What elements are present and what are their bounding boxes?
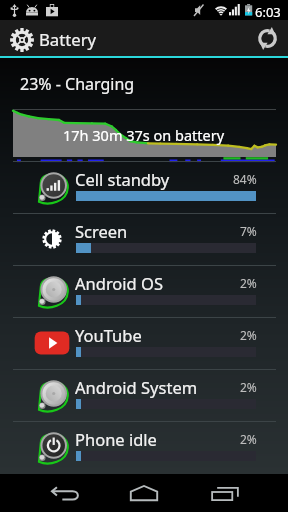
staticText: Screen	[75, 220, 128, 242]
staticText: YouTube	[75, 324, 142, 346]
button[interactable]: Android OS	[0, 266, 288, 317]
button[interactable]: Refresh	[246, 20, 288, 56]
staticText: Phone idle	[75, 428, 157, 450]
staticText: 7%	[240, 223, 257, 239]
staticText: Android OS	[75, 272, 163, 294]
staticText: 6:03	[255, 3, 281, 21]
button[interactable]: Android System	[0, 370, 288, 421]
button[interactable]: Screen	[0, 214, 288, 265]
staticText: 17h 30m 37s on battery	[63, 125, 225, 145]
button[interactable]: Cell standby	[0, 162, 288, 213]
staticText: 84%	[233, 171, 257, 187]
staticText: 2%	[240, 379, 257, 395]
button[interactable]: Back	[22, 474, 106, 512]
button[interactable]: Home	[102, 474, 186, 512]
staticText: 2%	[240, 275, 257, 291]
button[interactable]: Settings	[0, 20, 82, 56]
staticText: 2%	[240, 431, 257, 447]
button[interactable]: Recent apps	[183, 474, 267, 512]
staticText: Cell standby	[75, 168, 170, 190]
staticText: Battery	[39, 28, 97, 51]
staticText: 23% - Charging	[20, 73, 135, 95]
button[interactable]: Phone idle	[0, 422, 288, 473]
other: Settings	[10, 28, 34, 52]
staticText: Android System	[75, 376, 198, 398]
staticText: 2%	[240, 327, 257, 343]
button[interactable]: YouTube	[0, 318, 288, 369]
